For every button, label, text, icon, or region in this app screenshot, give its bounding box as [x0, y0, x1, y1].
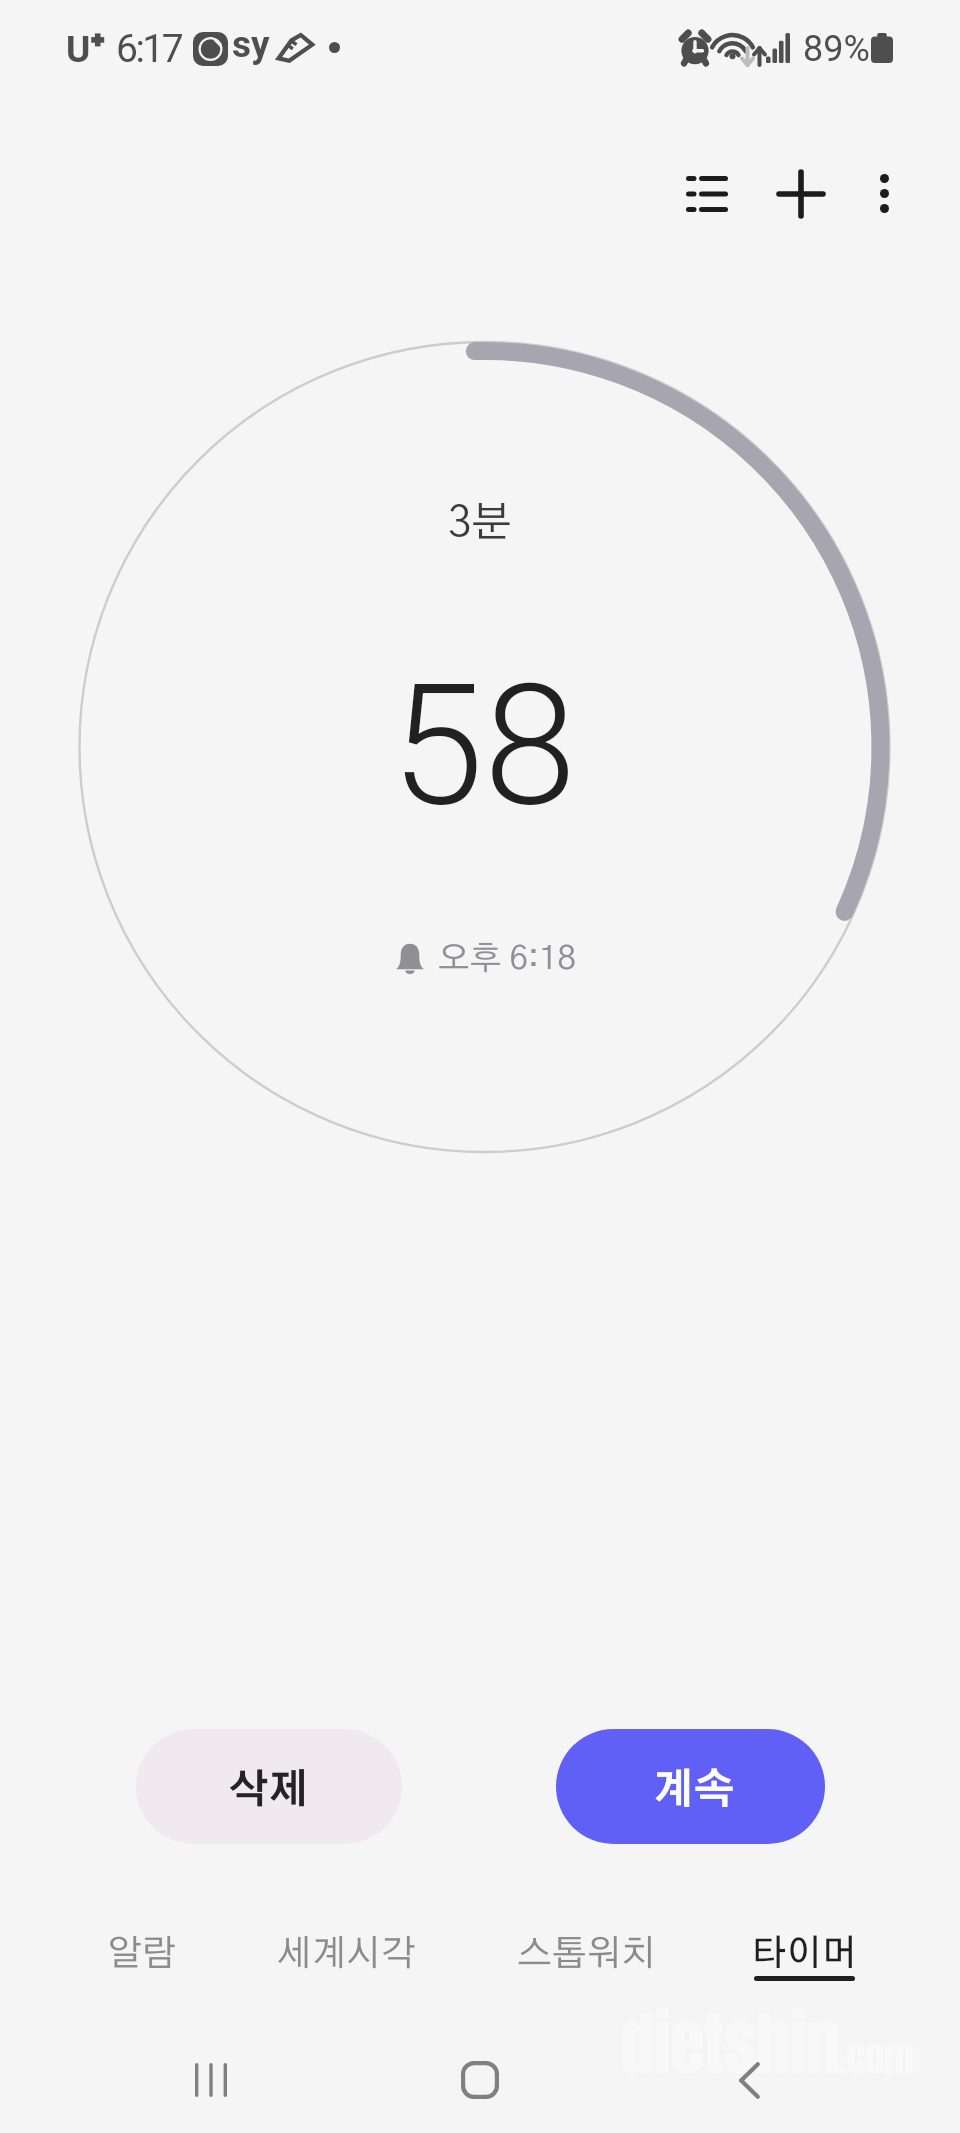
button[interactable]: 계속 — [556, 1729, 825, 1844]
button[interactable]: 삭제 — [136, 1729, 402, 1844]
button[interactable]: 알람 — [42, 1896, 242, 1992]
staticText: 타이머 — [751, 1936, 857, 1972]
button[interactable]: More options — [839, 148, 930, 239]
staticText: U — [66, 28, 91, 71]
button[interactable]: 타이머 — [704, 1896, 904, 1992]
button[interactable]: Home — [434, 2034, 526, 2126]
staticText: 58 — [391, 648, 577, 844]
button[interactable]: 스톱워치 — [486, 1896, 686, 1992]
staticText: dietshin — [620, 1991, 840, 2096]
staticText: 계속 — [653, 1770, 735, 1811]
button[interactable]: Recent apps — [165, 2034, 257, 2126]
staticText: 스톱워치 — [517, 1936, 656, 1972]
button[interactable]: 세계시각 — [246, 1896, 446, 1992]
staticText: 삭제 — [229, 1771, 309, 1811]
button[interactable]: Timer list — [661, 148, 752, 239]
staticText: sy — [232, 23, 270, 66]
staticText: 세계시각 — [277, 1936, 416, 1972]
staticText: 알람 — [107, 1936, 177, 1972]
staticText: 6:17 — [116, 26, 182, 72]
button[interactable]: Back — [703, 2034, 795, 2126]
staticText: 89% — [803, 28, 870, 70]
staticText: 3분 — [448, 502, 512, 544]
button[interactable]: Add timer — [755, 148, 846, 239]
staticText: 오후 6:18 — [438, 943, 576, 976]
